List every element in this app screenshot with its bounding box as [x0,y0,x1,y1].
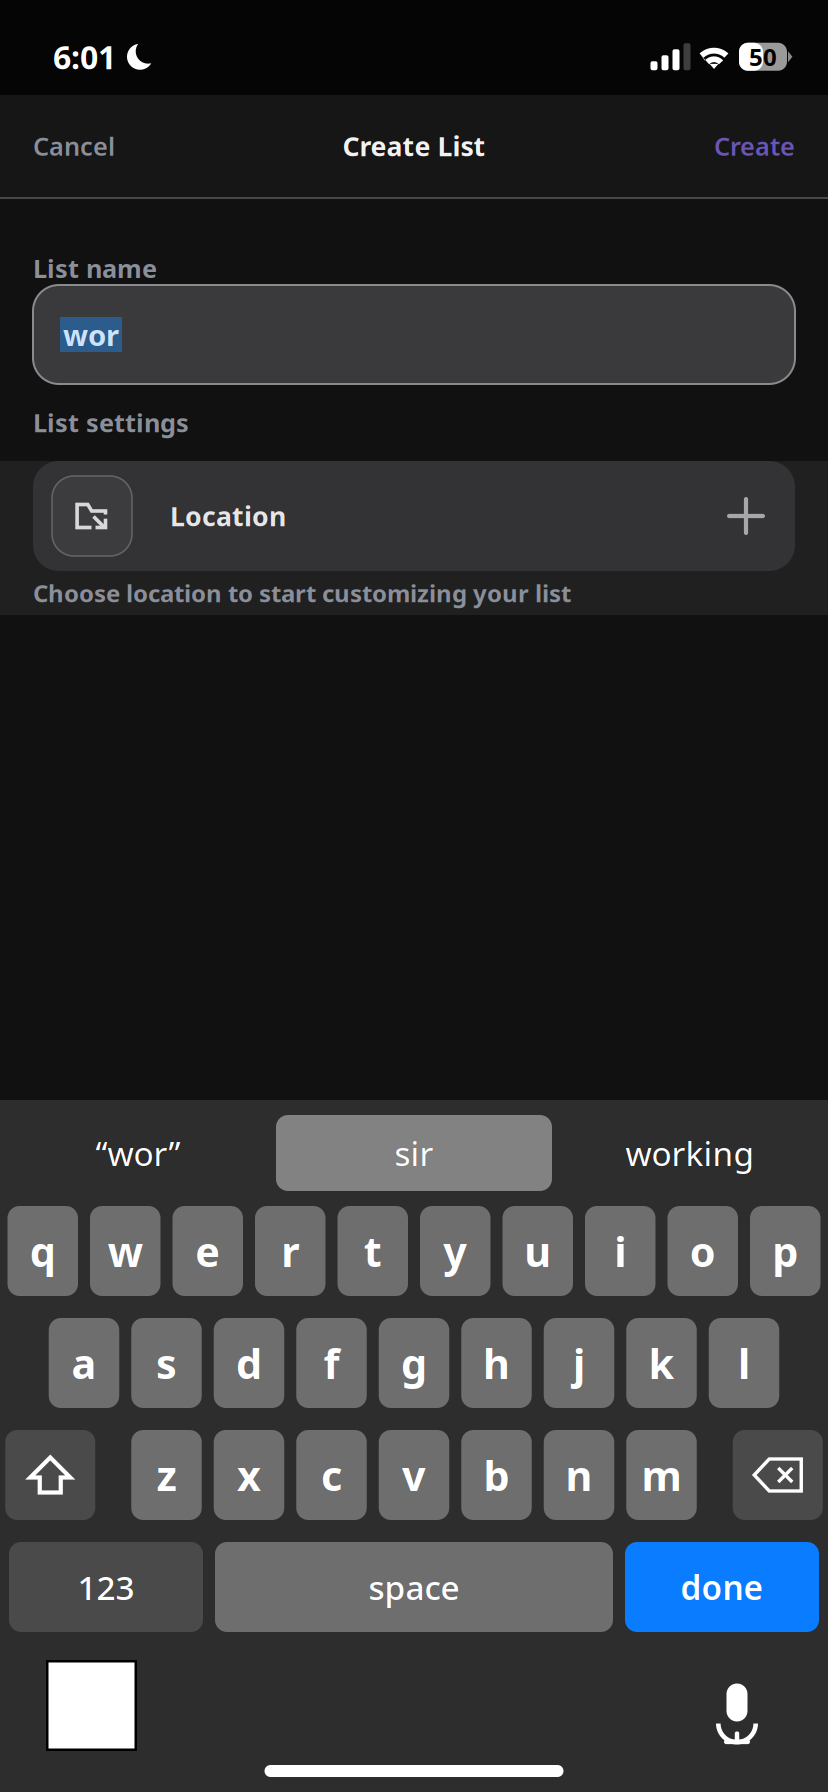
button[interactable]: c [296,1430,367,1520]
staticText: 123 [77,1565,134,1609]
button[interactable]: x [214,1430,284,1520]
staticText: l [738,1336,750,1390]
button[interactable]: p [750,1206,820,1296]
staticText: z [156,1448,176,1502]
button[interactable]: g [379,1318,449,1408]
button[interactable]: n [544,1430,614,1520]
button[interactable]: m [626,1430,697,1520]
staticText: Create List [342,128,485,164]
button[interactable]: r [255,1206,325,1296]
button[interactable]: a [49,1318,119,1408]
button[interactable]: u [502,1206,573,1296]
staticText: s [156,1336,177,1390]
staticText: Location [170,498,286,534]
staticText: c [321,1448,342,1502]
button[interactable]: s [131,1318,202,1408]
staticText: v [402,1448,426,1502]
staticText: Choose location to start customizing you… [33,577,571,609]
button[interactable]: d [214,1318,284,1408]
button[interactable]: o [667,1206,738,1296]
button[interactable]: Cancel [0,107,148,185]
button[interactable]: b [461,1430,532,1520]
staticText: Create [714,129,795,163]
button[interactable]: Choose location [52,476,132,556]
button[interactable]: sir [276,1115,552,1191]
button[interactable]: Emoji keyboard [46,1654,137,1751]
staticText: m [641,1448,681,1502]
staticText: u [524,1224,551,1278]
button[interactable]: done [625,1542,819,1632]
staticText: Cancel [33,129,115,163]
staticText: k [648,1336,674,1390]
staticText: r [281,1224,299,1278]
button[interactable]: k [626,1318,697,1408]
staticText: d [236,1336,262,1390]
staticText: o [690,1224,716,1278]
staticText: done [680,1565,763,1609]
button[interactable]: “wor” [0,1115,276,1191]
staticText: j [573,1336,585,1390]
staticText: 6:01 [53,35,116,78]
button[interactable]: Delete [733,1430,823,1520]
staticText: space [368,1565,459,1609]
staticText: List settings [33,406,189,439]
staticText: e [195,1224,220,1278]
staticText: h [483,1336,510,1390]
staticText: sir [394,1131,433,1175]
staticText: “wor” [95,1131,180,1175]
button[interactable]: t [337,1206,408,1296]
staticText: x [237,1448,261,1502]
staticText: q [30,1224,56,1278]
staticText: b [483,1448,509,1502]
staticText: i [614,1224,626,1278]
button[interactable]: Add location [727,497,769,535]
button[interactable]: e [172,1206,243,1296]
button[interactable]: i [585,1206,655,1296]
button[interactable]: v [379,1430,449,1520]
button[interactable]: l [709,1318,779,1408]
button[interactable]: Shift [5,1430,95,1520]
staticText: t [364,1224,382,1278]
staticText: p [772,1224,798,1278]
staticText: y [443,1224,467,1278]
button[interactable]: h [461,1318,532,1408]
staticText: working [625,1131,754,1175]
staticText: 50 [749,41,777,73]
staticText: g [401,1336,427,1390]
button[interactable]: f [296,1318,367,1408]
button[interactable]: w [90,1206,160,1296]
staticText: a [71,1336,96,1390]
button[interactable]: j [544,1318,614,1408]
button[interactable]: q [7,1206,78,1296]
button[interactable]: 123 [9,1542,203,1632]
button[interactable]: space [215,1542,613,1632]
staticText: f [323,1336,339,1390]
staticText: n [565,1448,592,1502]
button[interactable]: y [420,1206,490,1296]
staticText: w [108,1224,143,1278]
button[interactable]: working [552,1115,828,1191]
staticText: wor [63,315,119,354]
button[interactable]: Create [681,107,828,185]
staticText: List name [33,251,157,285]
button[interactable]: z [131,1430,202,1520]
button[interactable]: Dictation [716,1669,758,1735]
